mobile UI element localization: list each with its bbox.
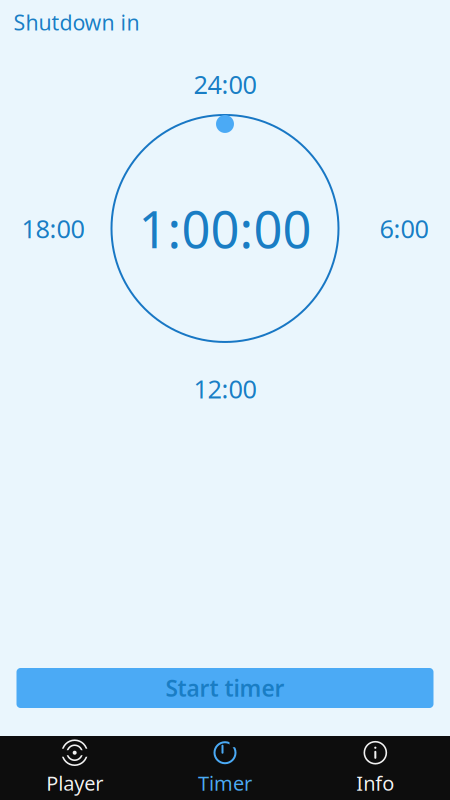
staticText: Start timer — [165, 673, 284, 703]
staticText: 24:00 — [193, 67, 256, 101]
staticText: Info — [356, 770, 394, 796]
button[interactable]: Player — [0, 736, 150, 800]
staticText: Player — [46, 770, 103, 796]
staticText: Shutdown in — [13, 8, 139, 36]
button[interactable]: Start timer — [16, 668, 433, 708]
staticText: Timer — [198, 770, 252, 796]
staticText: 18:00 — [21, 212, 84, 245]
staticText: 6:00 — [379, 212, 428, 245]
button[interactable]: Timer — [150, 736, 300, 800]
staticText: 12:00 — [193, 372, 256, 406]
staticText: 1:00:00 — [138, 195, 311, 262]
button[interactable]: Info — [300, 736, 450, 800]
